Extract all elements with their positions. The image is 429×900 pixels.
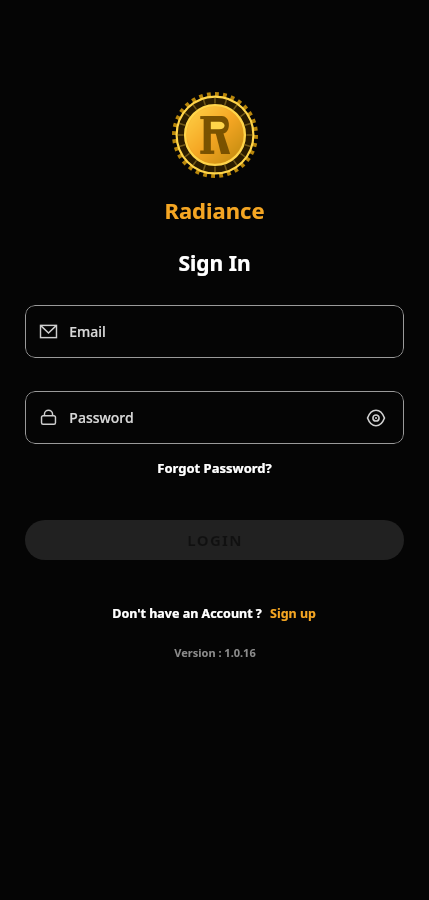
button[interactable]: Password icon (25, 391, 404, 444)
other: Password icon (40, 409, 57, 426)
button[interactable]: Email icon (25, 305, 404, 358)
staticText: Forgot Password? (157, 459, 272, 477)
staticText: Version : 1.0.16 (174, 645, 256, 660)
button[interactable]: Forgot Password? (151, 457, 278, 479)
staticText: Don't have an Account ? (112, 605, 262, 622)
staticText: Email (69, 322, 106, 341)
staticText: Radiance (164, 195, 265, 225)
other: Radiance logo (172, 92, 258, 178)
button[interactable]: Show password (363, 405, 389, 431)
staticText: Password (69, 408, 134, 427)
staticText: LOGIN (187, 530, 243, 550)
staticText: Sign up (270, 605, 316, 622)
button[interactable]: LOGIN (25, 520, 404, 560)
staticText: Sign In (178, 249, 251, 278)
other: Email icon (40, 323, 57, 340)
button[interactable]: Sign up (268, 603, 318, 624)
